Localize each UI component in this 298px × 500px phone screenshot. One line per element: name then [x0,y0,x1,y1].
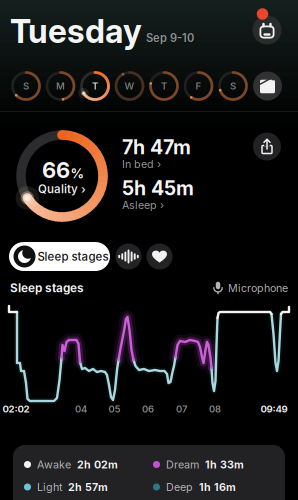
staticText: F [195,80,201,92]
staticText: 66 [42,157,70,183]
button[interactable]: Share [251,130,283,162]
staticText: 02:02 [2,403,29,415]
staticText: Sleep stages [10,281,84,295]
staticText: 7h 47m [122,135,191,159]
staticText: S [230,80,236,92]
staticText: Sep 9-10 [146,31,194,45]
staticText: 05 [108,403,120,415]
staticText: T [161,80,167,92]
button[interactable]: Saturday [217,70,249,102]
staticText: 1h 16m [199,480,236,493]
staticText: In bed › [122,157,161,170]
staticText: 1h 33m [205,458,244,471]
staticText: 06 [142,403,154,415]
staticText: S [23,80,29,92]
staticText: Quality › [38,182,86,196]
button[interactable]: 7h 47m [122,135,252,172]
button[interactable]: Sunday [10,70,42,102]
button[interactable]: Sleep notes [251,70,283,102]
button[interactable]: Sleep stages [9,242,110,271]
button[interactable]: Wednesday [113,70,145,102]
staticText: Dream [166,458,199,471]
staticText: Microphone [228,281,288,294]
staticText: 5h 45m [122,176,194,200]
button[interactable]: Tuesday [79,70,111,102]
button[interactable]: Heart rate [145,242,173,270]
button[interactable]: Sleep sounds [114,242,142,270]
button[interactable]: 66 [9,123,115,229]
staticText: 2h 02m [77,458,118,471]
staticText: 07 [176,403,187,415]
button[interactable]: Monday [44,70,76,102]
staticText: % [70,165,84,181]
button[interactable]: Thursday [148,70,180,102]
staticText: 2h 57m [68,480,108,493]
button[interactable]: 5h 45m [122,176,252,213]
staticText: Tuesday [10,11,142,51]
button[interactable]: Calendar [246,4,286,48]
staticText: Awake [37,458,71,471]
staticText: Sleep stages [37,250,108,263]
button[interactable]: Microphone [210,279,288,297]
staticText: M [56,80,65,92]
button[interactable]: Friday [182,70,214,102]
staticText: Deep [166,480,193,493]
staticText: Light [37,480,62,493]
staticText: 04 [75,403,87,415]
staticText: T [92,80,98,92]
staticText: W [124,80,134,92]
staticText: 09:49 [260,403,287,415]
staticText: 08 [209,403,221,415]
staticText: Asleep › [122,198,164,211]
